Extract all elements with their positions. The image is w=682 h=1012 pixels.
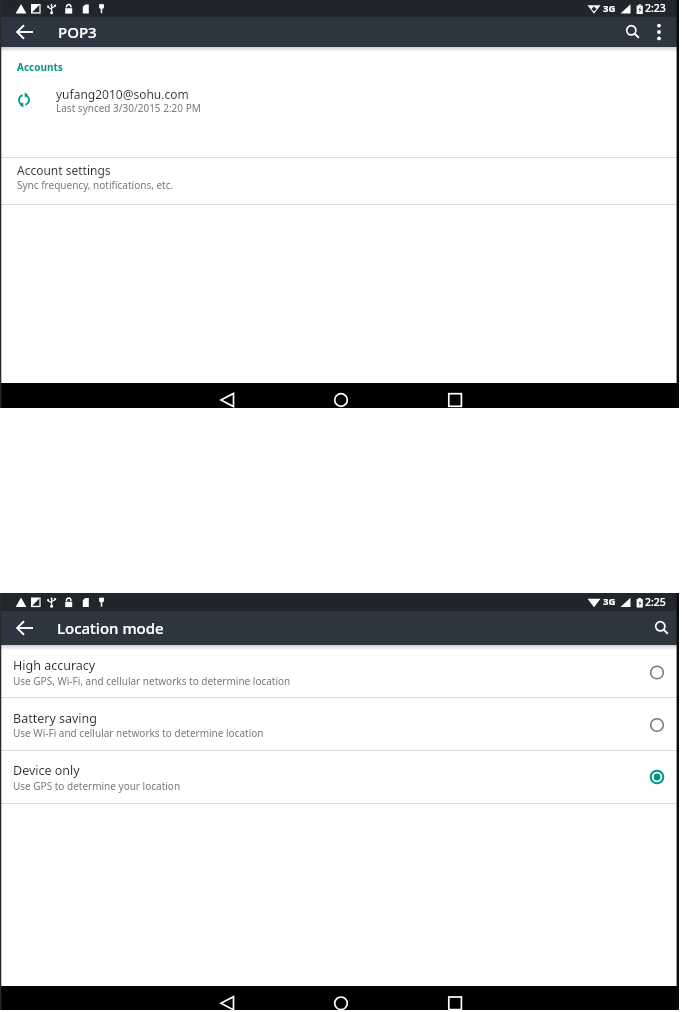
button[interactable]: High accuracy [0, 646, 679, 697]
staticText: Use GPS to determine your location [13, 779, 181, 793]
staticText: Use Wi-Fi and cellular networks to deter… [13, 726, 264, 740]
staticText: 3G [603, 2, 616, 15]
button[interactable]: Device only [0, 751, 679, 803]
button[interactable] [646, 611, 678, 645]
button[interactable] [617, 17, 649, 47]
button[interactable]: Account settings [0, 158, 679, 204]
staticText: POP3 [58, 22, 97, 42]
button[interactable] [434, 986, 476, 1010]
staticText: 2:23 [645, 1, 666, 15]
staticText: 3G [603, 595, 616, 608]
button[interactable] [213, 986, 255, 1010]
staticText: High accuracy [13, 657, 96, 674]
staticText: Last synced 3/30/2015 2:20 PM [56, 101, 201, 115]
staticText: Accounts [17, 60, 63, 74]
staticText: yufang2010@sohu.com [56, 86, 189, 102]
button[interactable] [434, 383, 476, 407]
staticText: Account settings [17, 162, 111, 178]
staticText: Battery saving [13, 710, 97, 727]
staticText: 2:25 [645, 595, 666, 609]
button[interactable] [320, 383, 362, 407]
button[interactable] [213, 383, 255, 407]
button[interactable]: yufang2010@sohu.com [0, 72, 679, 157]
staticText: Sync frequency, notifications, etc. [17, 178, 174, 192]
button[interactable]: Battery saving [0, 698, 679, 750]
button[interactable] [9, 611, 41, 645]
button[interactable] [320, 986, 362, 1010]
staticText: Location mode [57, 618, 164, 638]
staticText: Use GPS, Wi-Fi, and cellular networks to… [13, 674, 291, 688]
staticText: Device only [13, 762, 80, 779]
button[interactable] [9, 17, 41, 47]
button[interactable] [648, 17, 670, 47]
